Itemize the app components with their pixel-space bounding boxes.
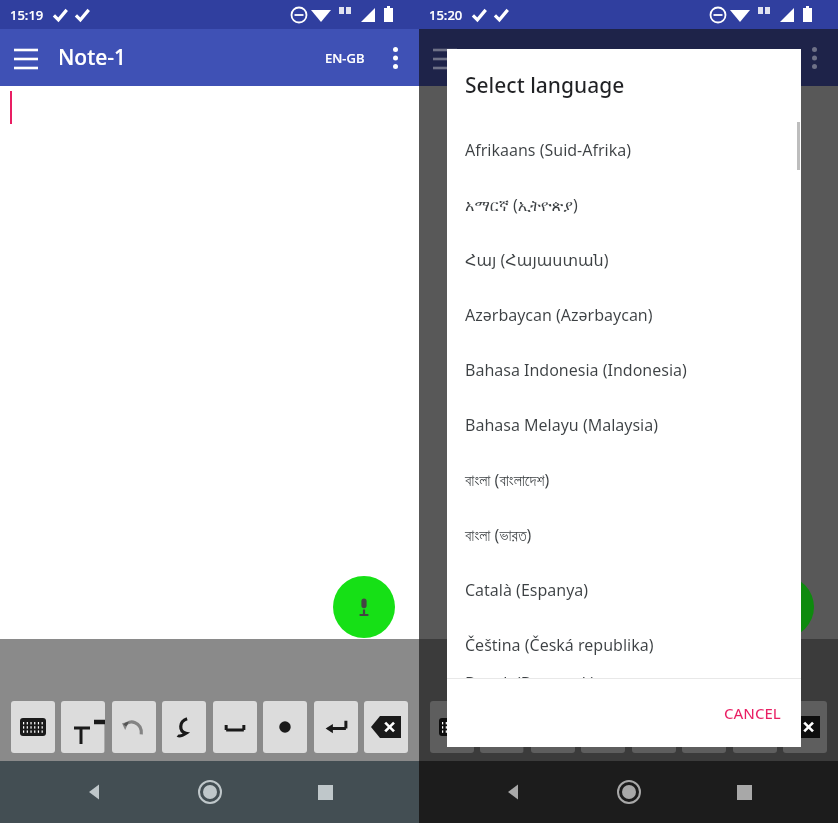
button[interactable]: Home xyxy=(188,770,232,814)
button[interactable]: Key 1 xyxy=(61,701,105,753)
button[interactable]: Key 2 xyxy=(531,701,575,753)
button[interactable]: Bahasa Indonesia (Indonesia) xyxy=(447,342,801,397)
button[interactable]: Հայ (Հայաստան) xyxy=(447,232,801,287)
staticText: Note-1 xyxy=(58,43,126,72)
button[interactable]: Key 1 xyxy=(480,701,524,753)
button[interactable]: Key 4 xyxy=(213,701,257,753)
button[interactable]: Recents xyxy=(722,770,766,814)
button[interactable]: Key 6 xyxy=(314,701,358,753)
button[interactable]: Key 5 xyxy=(682,701,726,753)
staticText: বাংলা (ভারত) xyxy=(465,524,532,546)
staticText: Bahasa Indonesia (Indonesia) xyxy=(465,359,687,381)
button[interactable]: Key 7 xyxy=(364,701,408,753)
staticText: 15:20 xyxy=(429,6,463,24)
button[interactable]: Key 6 xyxy=(733,701,777,753)
button[interactable]: Key 5 xyxy=(263,701,307,753)
button[interactable]: አማርኛ (ኢትዮጵያ) xyxy=(447,177,801,232)
staticText: বাংলা (বাংলাদেশ) xyxy=(465,469,550,491)
button[interactable]: Key 7 xyxy=(783,701,827,753)
button[interactable]: Key 3 xyxy=(581,701,625,753)
button[interactable]: CANCEL xyxy=(704,691,801,735)
button[interactable]: Recents xyxy=(303,770,347,814)
staticText: 15:19 xyxy=(10,6,44,24)
staticText: CANCEL xyxy=(724,703,781,723)
button[interactable]: Azərbaycan (Azərbaycan) xyxy=(447,287,801,342)
button[interactable]: Key 2 xyxy=(112,701,156,753)
button[interactable]: Bahasa Melayu (Malaysia) xyxy=(447,397,801,452)
button[interactable]: Dansk (Danmark) xyxy=(447,672,801,679)
staticText: EN-GB xyxy=(325,49,365,67)
button[interactable]: বাংলা (বাংলাদেশ) xyxy=(447,452,801,507)
button[interactable]: EN-GB xyxy=(319,41,371,75)
button[interactable]: Català (Espanya) xyxy=(447,562,801,617)
staticText: Select language xyxy=(465,71,625,100)
staticText: Čeština (Česká republika) xyxy=(465,634,654,656)
button[interactable]: Open navigation drawer xyxy=(0,32,52,84)
staticText: Afrikaans (Suid-Afrika) xyxy=(465,139,632,161)
button[interactable]: Home xyxy=(607,770,651,814)
button[interactable]: বাংলা (ভারত) xyxy=(447,507,801,562)
staticText: Català (Espanya) xyxy=(465,579,589,601)
staticText: Bahasa Melayu (Malaysia) xyxy=(465,414,659,436)
button[interactable]: Voice input xyxy=(333,576,395,638)
button[interactable]: Key 0 xyxy=(11,701,55,753)
button[interactable]: More options xyxy=(371,34,419,82)
button[interactable]: Key 4 xyxy=(632,701,676,753)
button[interactable]: Back xyxy=(72,770,116,814)
staticText: Azərbaycan (Azərbaycan) xyxy=(465,304,653,326)
staticText: Dansk (Danmark) xyxy=(465,672,596,679)
button[interactable]: Back xyxy=(491,770,535,814)
staticText: አማርኛ (ኢትዮጵያ) xyxy=(465,194,578,216)
button[interactable]: Čeština (Česká republika) xyxy=(447,617,801,672)
button[interactable]: Key 0 xyxy=(430,701,474,753)
button[interactable]: Key 3 xyxy=(162,701,206,753)
staticText: Հայ (Հայաստան) xyxy=(465,249,609,271)
button[interactable]: Afrikaans (Suid-Afrika) xyxy=(447,122,801,177)
